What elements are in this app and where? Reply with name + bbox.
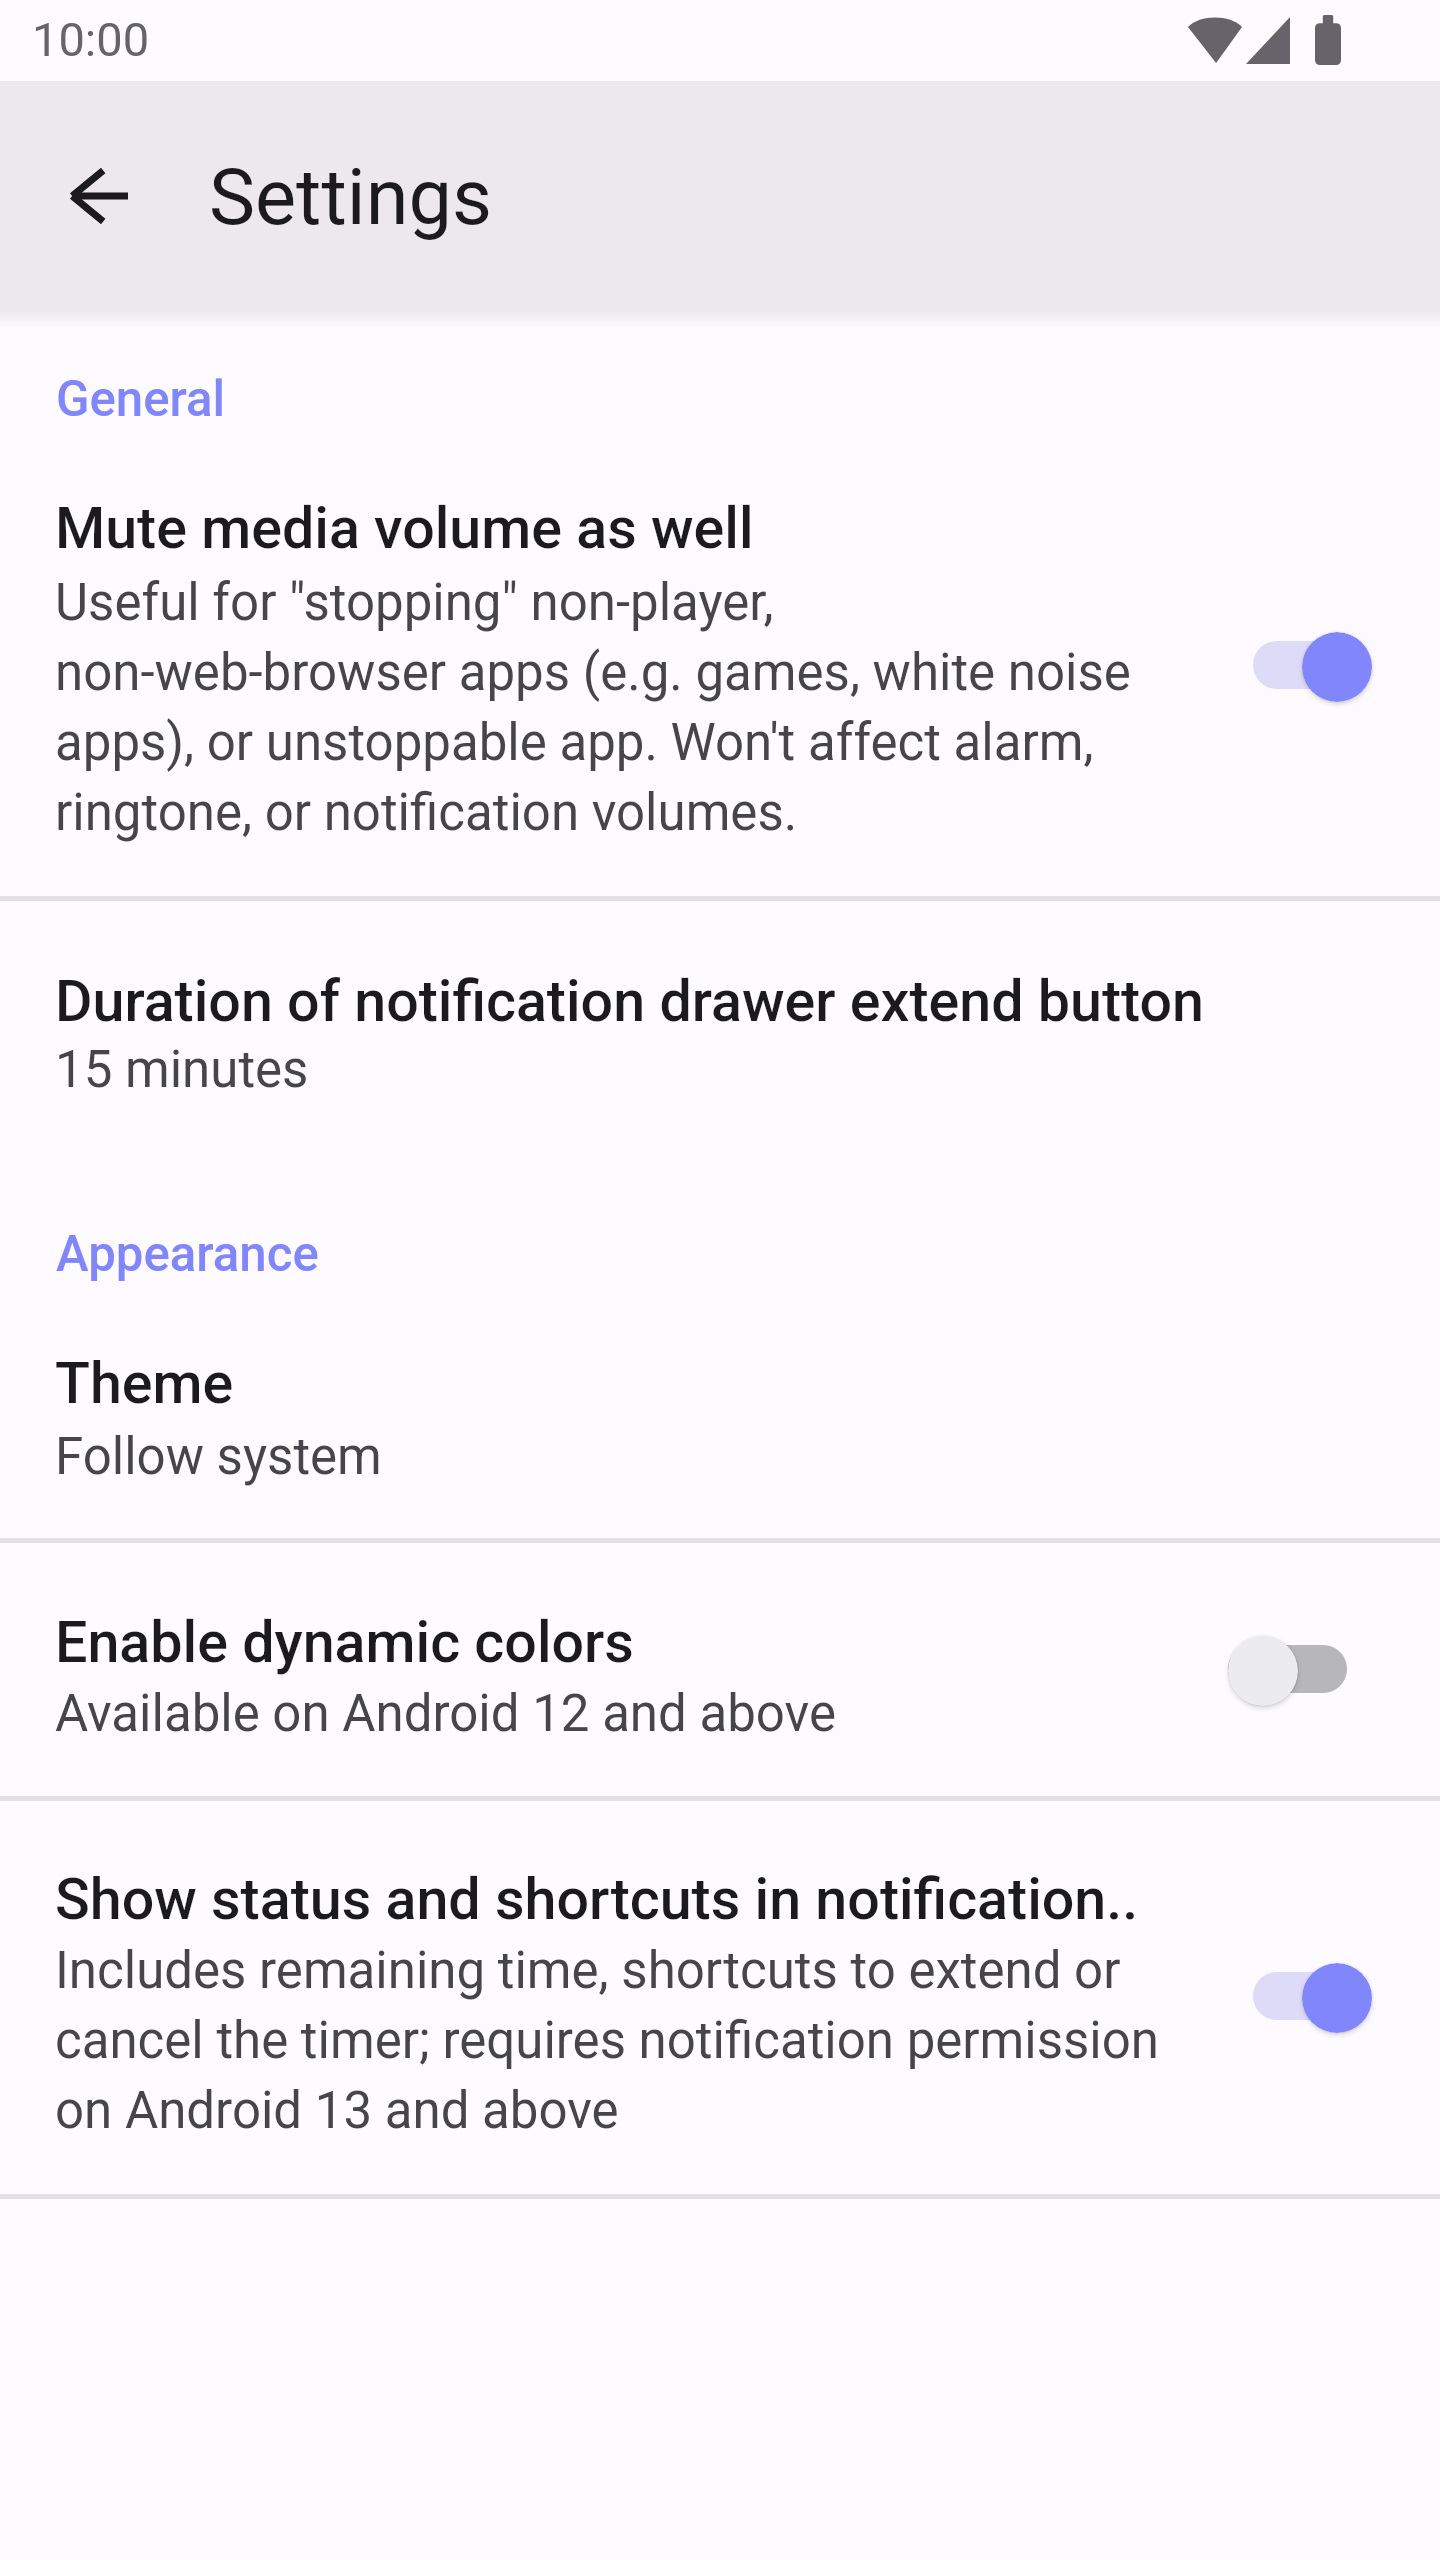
staticText: Mute media volume as well (55, 495, 1375, 562)
button[interactable] (0, 1801, 1440, 2194)
button[interactable]: Enabled (1253, 632, 1372, 702)
staticText: Available on Android 12 and above (55, 1676, 1375, 1746)
staticText: Includes remaining time, shortcuts to ex… (55, 1933, 1375, 2143)
button[interactable]: Enabled (1253, 1963, 1372, 2033)
staticText: Show status and shortcuts in notificatio… (55, 1866, 1375, 1933)
staticText: General (56, 370, 226, 428)
staticText: Theme (55, 1350, 1375, 1417)
staticText: 15 minutes (55, 1032, 1375, 1102)
staticText: Useful for "stopping" non-player, non-we… (55, 565, 1375, 845)
button[interactable]: Back (28, 125, 168, 265)
button[interactable] (0, 1290, 1440, 1538)
staticText: Enable dynamic colors (55, 1609, 1375, 1676)
staticText: Duration of notification drawer extend b… (55, 968, 1375, 1035)
button[interactable] (0, 309, 1440, 896)
staticText: Appearance (56, 1225, 319, 1283)
button[interactable]: Disabled (1228, 1636, 1347, 1706)
staticText: Follow system (55, 1419, 1375, 1489)
staticText: Settings (209, 152, 492, 243)
button[interactable] (0, 901, 1440, 1538)
button[interactable] (0, 1543, 1440, 1796)
staticText: 10:00 (32, 12, 150, 67)
